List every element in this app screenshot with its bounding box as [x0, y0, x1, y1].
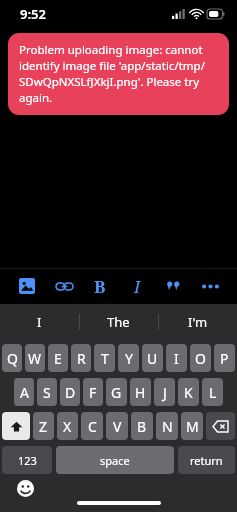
- staticText: Z: [39, 417, 48, 436]
- button[interactable]: Shift: [2, 412, 30, 440]
- button[interactable]: K: [178, 378, 199, 406]
- staticText: U: [147, 349, 158, 368]
- staticText: K: [184, 383, 193, 402]
- staticText: C: [88, 417, 97, 436]
- button[interactable]: P: [214, 344, 235, 372]
- staticText: return: [190, 453, 223, 468]
- button[interactable]: A: [14, 378, 34, 406]
- staticText: F: [89, 383, 97, 402]
- button[interactable]: T: [94, 344, 115, 372]
- button[interactable]: U: [142, 344, 163, 372]
- staticText: J: [163, 383, 167, 402]
- button[interactable]: O: [190, 344, 211, 372]
- button[interactable]: E: [48, 344, 68, 372]
- button[interactable]: C: [81, 412, 103, 440]
- button[interactable]: M: [181, 412, 203, 440]
- button[interactable]: H: [130, 378, 151, 406]
- button[interactable]: I'm: [158, 304, 237, 340]
- button[interactable]: Bold: [85, 271, 115, 301]
- staticText: M: [186, 417, 199, 436]
- button[interactable]: Backspace: [206, 412, 235, 440]
- button[interactable]: D: [60, 378, 80, 406]
- staticText: Y: [125, 349, 133, 368]
- button[interactable]: W: [25, 344, 45, 372]
- staticText: P: [220, 349, 229, 368]
- staticText: L: [209, 383, 217, 402]
- button[interactable]: L: [202, 378, 223, 406]
- button[interactable]: The: [79, 304, 158, 340]
- button[interactable]: Y: [118, 344, 139, 372]
- staticText: I: [37, 313, 42, 331]
- button[interactable]: I: [166, 344, 187, 372]
- button[interactable]: Problem uploading image: cannot identify…: [8, 33, 229, 115]
- staticText: Q: [7, 349, 18, 368]
- staticText: O: [195, 349, 206, 368]
- button[interactable]: G: [106, 378, 127, 406]
- button[interactable]: N: [156, 412, 178, 440]
- staticText: X: [63, 417, 72, 436]
- staticText: I: [134, 275, 141, 298]
- button[interactable]: V: [106, 412, 128, 440]
- staticText: N: [162, 417, 173, 436]
- staticText: W: [28, 349, 42, 368]
- staticText: I: [174, 349, 179, 368]
- staticText: space: [100, 453, 130, 468]
- staticText: R: [77, 349, 86, 368]
- staticText: V: [113, 417, 122, 436]
- staticText: S: [43, 383, 51, 402]
- button[interactable]: Z: [33, 412, 54, 440]
- staticText: E: [54, 349, 62, 368]
- staticText: T: [101, 349, 109, 368]
- button[interactable]: Q: [2, 344, 22, 372]
- button[interactable]: Insert link: [49, 271, 79, 301]
- staticText: D: [65, 383, 76, 402]
- staticText: I'm: [188, 313, 208, 331]
- button[interactable]: S: [37, 378, 57, 406]
- staticText: B: [94, 275, 106, 298]
- button[interactable]: return: [178, 446, 235, 474]
- button[interactable]: Insert image: [12, 271, 42, 301]
- staticText: G: [111, 383, 122, 402]
- button[interactable]: space: [56, 446, 174, 474]
- staticText: 123: [18, 453, 37, 468]
- button[interactable]: B: [131, 412, 153, 440]
- button[interactable]: More options: [195, 271, 225, 301]
- staticText: B: [137, 417, 147, 436]
- button[interactable]: 123: [2, 446, 52, 474]
- staticText: 9:52: [20, 5, 46, 23]
- staticText: Problem uploading image: cannot identify…: [19, 42, 218, 106]
- button[interactable]: R: [71, 344, 91, 372]
- staticText: H: [135, 383, 146, 402]
- button[interactable]: I: [0, 304, 79, 340]
- button[interactable]: Emoji: [14, 477, 36, 499]
- button[interactable]: Italic: [122, 271, 152, 301]
- button[interactable]: X: [57, 412, 78, 440]
- staticText: The: [107, 313, 130, 331]
- staticText: A: [20, 383, 29, 402]
- button[interactable]: F: [83, 378, 103, 406]
- button[interactable]: J: [154, 378, 175, 406]
- button[interactable]: Quote: [158, 271, 188, 301]
